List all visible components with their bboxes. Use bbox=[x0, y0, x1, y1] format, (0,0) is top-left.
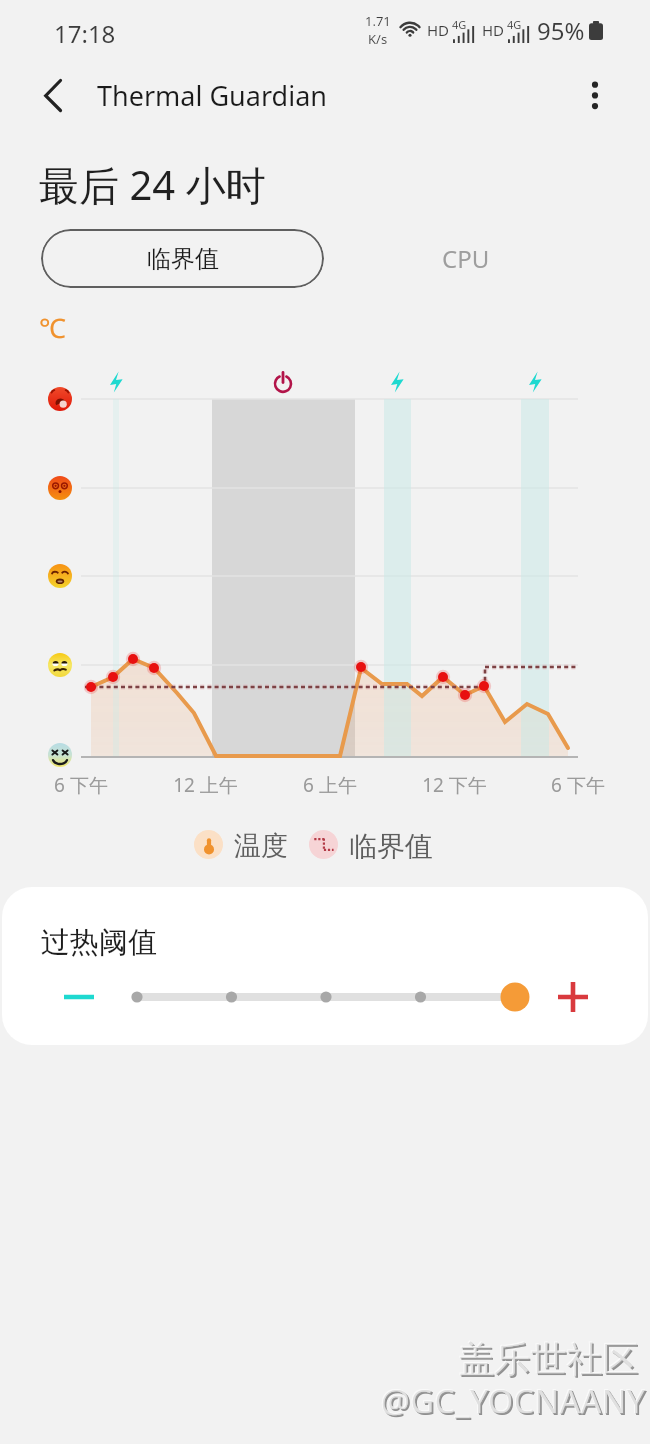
staticText: 1.71 bbox=[365, 12, 391, 30]
staticText: Thermal Guardian bbox=[97, 77, 327, 114]
staticText: 6 下午 bbox=[54, 772, 108, 798]
staticText: CPU bbox=[442, 242, 490, 275]
staticText: 盖乐世社区 bbox=[459, 1337, 639, 1382]
staticText: 4G bbox=[452, 17, 467, 32]
button[interactable]: Back bbox=[24, 66, 80, 122]
button[interactable]: 温度 bbox=[194, 829, 288, 859]
staticText: 12 上午 bbox=[173, 772, 238, 798]
staticText: 温度 bbox=[234, 829, 288, 859]
staticText: 最后 24 小时 bbox=[39, 157, 266, 212]
staticText: @GC_YOCNAANY bbox=[382, 1380, 647, 1425]
staticText: 4G bbox=[507, 17, 522, 32]
staticText: 临界值 bbox=[349, 829, 433, 859]
staticText: 95% bbox=[537, 14, 585, 47]
button[interactable]: 临界值 bbox=[309, 829, 433, 859]
staticText: 过热阈值 bbox=[41, 924, 157, 961]
staticText: 6 下午 bbox=[551, 772, 605, 798]
staticText: 17:18 bbox=[54, 17, 116, 50]
staticText: @GC_YOCNAANY bbox=[380, 1378, 645, 1423]
staticText: 盖乐世社区 bbox=[460, 1338, 640, 1383]
staticText: HD bbox=[427, 20, 450, 40]
button[interactable]: Overheat threshold slider bbox=[120, 977, 532, 1017]
staticText: 12 下午 bbox=[422, 772, 487, 798]
button[interactable]: CPU bbox=[324, 229, 607, 288]
staticText: 盖乐世社区 bbox=[458, 1336, 638, 1381]
staticText: 6 上午 bbox=[303, 772, 357, 798]
staticText: HD bbox=[482, 20, 505, 40]
staticText: @GC_YOCNAANY bbox=[381, 1379, 646, 1424]
button[interactable]: Increase bbox=[542, 977, 604, 1017]
button[interactable]: 临界值 bbox=[41, 229, 324, 288]
button[interactable]: Decrease bbox=[48, 977, 112, 1017]
button[interactable]: More options bbox=[571, 72, 619, 120]
staticText: K/s bbox=[368, 30, 388, 48]
staticText: ℃ bbox=[39, 309, 66, 346]
staticText: 临界值 bbox=[147, 244, 219, 274]
